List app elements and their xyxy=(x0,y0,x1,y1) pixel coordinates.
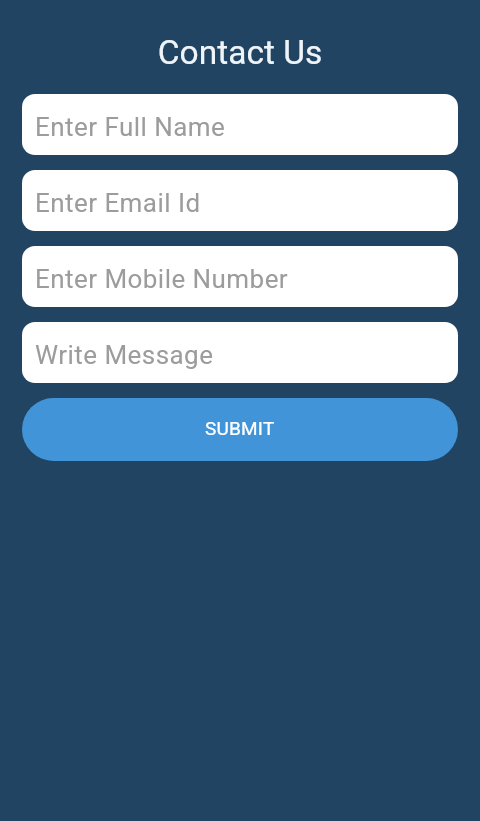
staticText: Enter Full Name xyxy=(35,112,226,142)
button[interactable]: Enter Full Name xyxy=(22,94,458,155)
staticText: Enter Mobile Number xyxy=(35,264,289,294)
staticText: Enter Email Id xyxy=(35,188,201,218)
staticText: Contact Us xyxy=(0,33,480,72)
staticText: SUBMIT xyxy=(205,417,275,439)
staticText: Write Message xyxy=(35,340,214,370)
button[interactable]: SUBMIT xyxy=(22,398,458,461)
button[interactable]: Write Message xyxy=(22,322,458,383)
button[interactable]: Enter Email Id xyxy=(22,170,458,231)
button[interactable]: Enter Mobile Number xyxy=(22,246,458,307)
